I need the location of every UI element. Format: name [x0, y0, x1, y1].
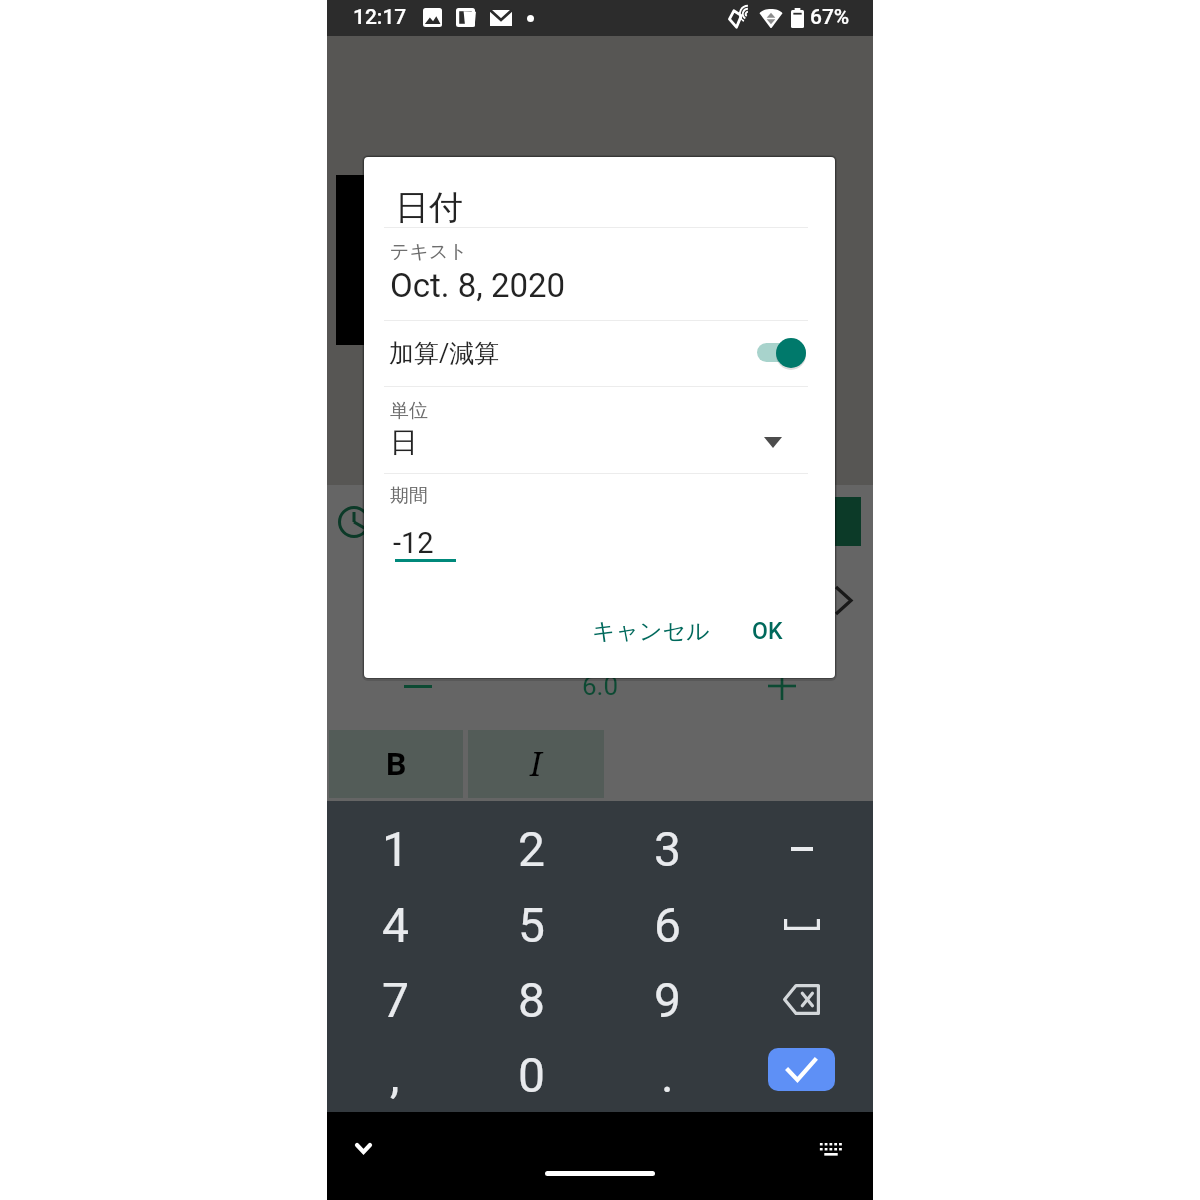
- staticText: B: [386, 745, 407, 783]
- button[interactable]: OK: [735, 606, 800, 656]
- staticText: 9: [654, 972, 681, 1028]
- button[interactable]: 8: [463, 962, 599, 1037]
- button[interactable]: キャンセル: [586, 606, 716, 656]
- staticText: -12: [393, 526, 434, 560]
- button[interactable]: 7: [327, 962, 463, 1037]
- button[interactable]: 3: [599, 811, 736, 887]
- staticText: .: [661, 1047, 674, 1103]
- button[interactable]: Switch keyboard: [811, 1134, 851, 1166]
- staticText: 単位: [390, 399, 428, 423]
- staticText: 0: [518, 1047, 545, 1103]
- staticText: 5: [518, 897, 545, 953]
- button[interactable]: B: [329, 730, 463, 798]
- staticText: 1: [382, 821, 409, 877]
- staticText: ,: [390, 1047, 400, 1103]
- staticText: I: [530, 742, 542, 786]
- button[interactable]: ,: [327, 1037, 463, 1112]
- staticText: 8: [518, 972, 545, 1028]
- staticText: 67%: [810, 5, 850, 30]
- button[interactable]: del: [736, 962, 873, 1037]
- button[interactable]: -: [736, 811, 873, 887]
- staticText: 加算/減算: [389, 338, 500, 369]
- button[interactable]: 9: [599, 962, 736, 1037]
- staticText: テキスト: [390, 240, 468, 264]
- staticText: 6.0: [582, 671, 619, 701]
- button[interactable]: 2: [463, 811, 599, 887]
- staticText: キャンセル: [592, 617, 710, 646]
- button[interactable]: I: [468, 730, 604, 798]
- button[interactable]: _: [736, 887, 873, 962]
- staticText: 2: [518, 821, 545, 877]
- staticText: 期間: [390, 484, 428, 508]
- staticText: 4: [382, 897, 409, 953]
- button[interactable]: .: [599, 1037, 736, 1112]
- button[interactable]: 0: [463, 1037, 599, 1112]
- button[interactable]: 6: [599, 887, 736, 962]
- staticText: Oct. 8, 2020: [390, 266, 566, 305]
- staticText: 6: [654, 897, 681, 953]
- button[interactable]: [364, 333, 835, 396]
- staticText: 日付: [395, 186, 463, 229]
- staticText: OK: [752, 618, 783, 645]
- button[interactable]: 4: [327, 887, 463, 962]
- button[interactable]: Hide keyboard: [343, 1128, 379, 1164]
- staticText: 7: [382, 972, 409, 1028]
- staticText: 12:17: [353, 5, 407, 30]
- button[interactable]: 5: [463, 887, 599, 962]
- button[interactable]: ok: [736, 1037, 873, 1112]
- staticText: 3: [654, 821, 681, 877]
- staticText: 日: [390, 425, 418, 460]
- button[interactable]: 1: [327, 811, 463, 887]
